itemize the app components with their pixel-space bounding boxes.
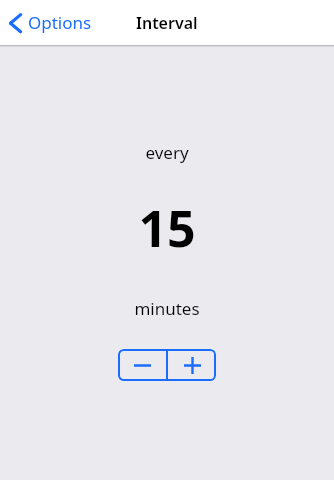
- staticText: minutes: [134, 297, 200, 320]
- staticText: every: [145, 141, 189, 164]
- staticText: 15: [138, 194, 196, 262]
- button[interactable]: Decrease interval: [118, 349, 166, 381]
- staticText: Interval: [136, 12, 198, 34]
- button[interactable]: Increase interval: [168, 349, 216, 381]
- button[interactable]: Back to Options: [4, 4, 94, 40]
- staticText: Options: [28, 11, 92, 34]
